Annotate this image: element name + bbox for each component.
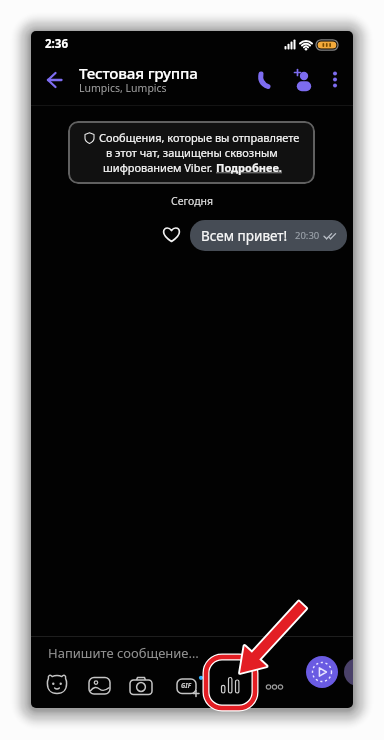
button[interactable] (88, 676, 111, 696)
staticText: 20:30 (295, 229, 320, 242)
button[interactable] (45, 673, 69, 697)
staticText: в этот чат, защищены сквозным (106, 145, 278, 160)
button[interactable] (325, 67, 345, 93)
button[interactable] (219, 675, 243, 695)
button[interactable] (263, 680, 287, 694)
staticText: Подробнее. (216, 160, 282, 175)
button[interactable]: GIF (176, 676, 202, 698)
staticText: Сообщения, которые вы отправляете (99, 130, 300, 145)
staticText: Всем привет! (201, 227, 288, 245)
staticText: 2:36 (45, 36, 68, 52)
button[interactable]: Напишите сообщение… (41, 641, 241, 663)
staticText: шифрованием Viber. (103, 160, 216, 175)
staticText: Сегодня (171, 194, 214, 208)
button[interactable] (254, 69, 278, 93)
button[interactable] (43, 69, 67, 93)
button[interactable] (291, 67, 317, 93)
button[interactable]: Всем привет! (190, 220, 347, 251)
staticText: Напишите сообщение… (48, 644, 199, 662)
button[interactable]: Сообщения, которые вы отправляете (68, 121, 315, 184)
button[interactable] (306, 656, 338, 688)
staticText: Тестовая группа (79, 63, 198, 84)
button[interactable] (129, 676, 153, 696)
staticText: GIF (181, 681, 191, 689)
staticText: Lumpics, Lumpics (79, 81, 167, 95)
